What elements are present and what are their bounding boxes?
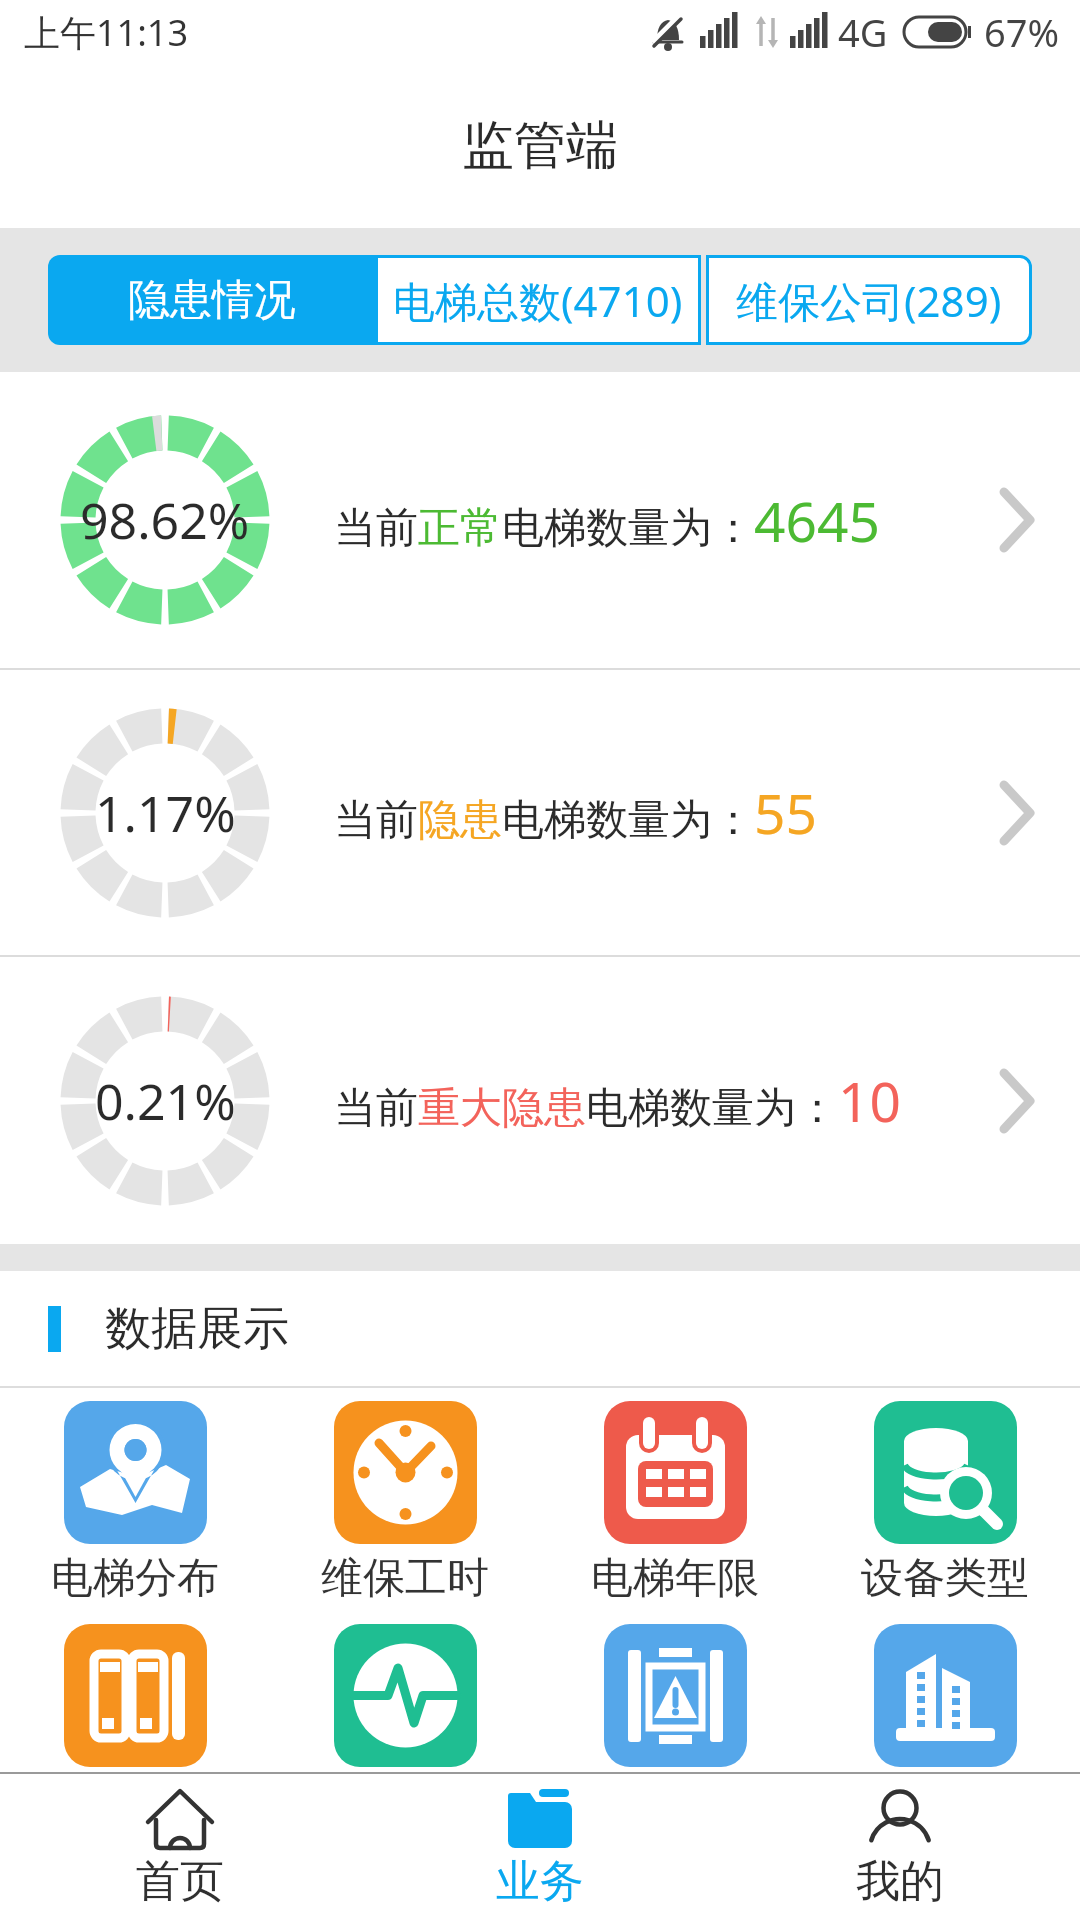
staticText: 4G — [838, 6, 888, 58]
staticText: 档案查询 — [51, 1775, 219, 1828]
button[interactable]: 维保公司(289) — [706, 255, 1032, 345]
button[interactable]: 首页 — [0, 1774, 360, 1920]
button[interactable]: 电梯总数(4710) — [375, 255, 701, 345]
staticText: 0.21% — [95, 1067, 236, 1135]
button[interactable]: 电梯年限 — [540, 1401, 810, 1605]
staticText: 当前隐患电梯数量为：55 — [334, 775, 817, 850]
button[interactable]: 我的 — [720, 1774, 1080, 1920]
staticText: 数据展示 — [105, 1300, 289, 1358]
button[interactable]: 98.62% — [0, 372, 1080, 668]
button[interactable]: 1.17% — [0, 670, 1080, 955]
button[interactable]: 隐患情况 — [48, 255, 375, 345]
button[interactable]: 业务 — [360, 1774, 720, 1920]
button[interactable]: 设备类型 — [810, 1401, 1080, 1605]
staticText: 单位查询 — [861, 1775, 1029, 1828]
button[interactable]: 单位查询 — [810, 1624, 1080, 1828]
button[interactable]: 0.21% — [0, 957, 1080, 1244]
button[interactable]: 故障统计 — [540, 1624, 810, 1828]
staticText: 98.62% — [80, 486, 250, 554]
staticText: 上午11:13 — [24, 8, 189, 57]
staticText: 设备类型 — [861, 1552, 1029, 1605]
staticText: 电梯总数(4710) — [393, 272, 683, 329]
staticText: 67% — [984, 6, 1060, 58]
button[interactable]: 运行监控 — [270, 1624, 540, 1828]
staticText: 电梯分布 — [51, 1552, 219, 1605]
staticText: 维保公司(289) — [736, 272, 1002, 329]
staticText: 维保工时 — [321, 1552, 489, 1605]
staticText: 当前正常电梯数量为：4645 — [334, 483, 880, 558]
staticText: 监管端 — [462, 113, 618, 179]
staticText: 电梯年限 — [591, 1552, 759, 1605]
staticText: 1.17% — [95, 779, 236, 847]
button[interactable]: 电梯分布 — [0, 1401, 270, 1605]
staticText: 我的 — [856, 1854, 944, 1909]
staticText: 当前重大隐患电梯数量为：10 — [334, 1063, 901, 1138]
staticText: 首页 — [136, 1854, 224, 1909]
staticText: 业务 — [496, 1854, 584, 1909]
staticText: 隐患情况 — [128, 274, 296, 327]
button[interactable]: 维保工时 — [270, 1401, 540, 1605]
button[interactable]: 档案查询 — [0, 1624, 270, 1828]
